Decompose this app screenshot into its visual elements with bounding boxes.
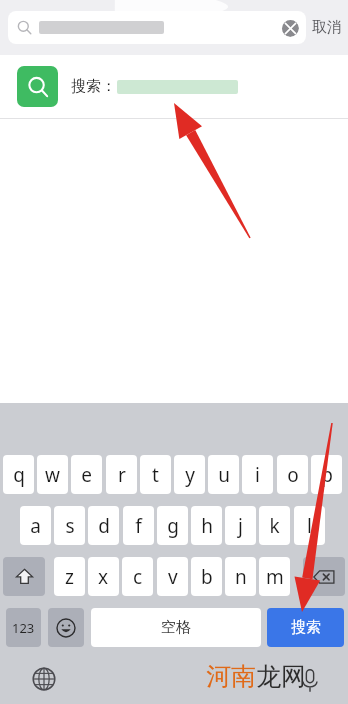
staticText: e <box>81 462 92 488</box>
button[interactable]: l <box>294 506 325 545</box>
button[interactable]: a <box>20 506 51 545</box>
staticText: o <box>287 462 299 488</box>
button[interactable]: i <box>242 455 273 494</box>
staticText: x <box>98 564 109 590</box>
button[interactable]: Emoji <box>48 608 84 647</box>
button[interactable]: m <box>259 557 290 596</box>
button[interactable]: 取消 <box>312 18 342 37</box>
staticText: m <box>266 564 284 590</box>
staticText: p <box>321 462 333 488</box>
staticText: l <box>307 513 312 539</box>
button[interactable]: r <box>106 455 137 494</box>
button[interactable]: 搜索： <box>0 55 348 118</box>
staticText: b <box>201 564 213 590</box>
staticText: r <box>118 462 126 488</box>
button[interactable]: x <box>88 557 119 596</box>
button[interactable]: p <box>311 455 342 494</box>
button[interactable]: 搜索 <box>267 608 344 647</box>
staticText: 空格 <box>161 618 191 637</box>
staticText: j <box>238 513 243 539</box>
staticText: k <box>269 513 280 539</box>
staticText: 搜索 <box>291 618 321 637</box>
button[interactable]: d <box>88 506 119 545</box>
staticText: 123 <box>12 619 35 637</box>
button[interactable]: o <box>277 455 308 494</box>
button[interactable]: h <box>191 506 222 545</box>
button[interactable]: w <box>37 455 68 494</box>
button[interactable]: q <box>3 455 34 494</box>
staticText: g <box>167 513 179 539</box>
staticText: 龙网 <box>256 661 306 692</box>
staticText: 河南 <box>206 661 256 692</box>
button[interactable]: c <box>122 557 153 596</box>
staticText: v <box>168 564 178 590</box>
staticText: h <box>201 513 213 539</box>
staticText: c <box>133 564 143 590</box>
staticText: d <box>98 513 110 539</box>
button[interactable]: t <box>140 455 171 494</box>
button[interactable]: n <box>225 557 256 596</box>
button[interactable]: g <box>157 506 188 545</box>
staticText: n <box>235 564 247 590</box>
button[interactable]: j <box>225 506 256 545</box>
button[interactable]: 空格 <box>91 608 261 647</box>
button[interactable]: z <box>54 557 85 596</box>
staticText: q <box>13 462 25 488</box>
button[interactable]: e <box>71 455 102 494</box>
button[interactable]: s <box>54 506 85 545</box>
staticText: u <box>218 462 230 488</box>
staticText: 搜索： <box>71 77 116 96</box>
button[interactable]: b <box>191 557 222 596</box>
button[interactable]: Clear <box>281 19 299 37</box>
button[interactable]: k <box>259 506 290 545</box>
button[interactable]: f <box>123 506 154 545</box>
button[interactable]: u <box>208 455 239 494</box>
button[interactable]: Shift <box>3 557 45 596</box>
staticText: i <box>255 462 260 488</box>
staticText: s <box>65 513 75 539</box>
staticText: y <box>185 462 195 488</box>
staticText: z <box>65 564 74 590</box>
staticText: a <box>30 513 41 539</box>
staticText: w <box>45 462 60 488</box>
button[interactable]: Clear <box>8 11 306 44</box>
button[interactable]: Change keyboard language <box>29 664 59 694</box>
button[interactable]: v <box>157 557 188 596</box>
button[interactable]: 123 <box>6 608 41 647</box>
button[interactable]: Delete <box>303 557 345 596</box>
staticText: 取消 <box>312 18 342 37</box>
staticText: f <box>135 513 142 539</box>
staticText: t <box>152 462 159 488</box>
button[interactable]: y <box>174 455 205 494</box>
